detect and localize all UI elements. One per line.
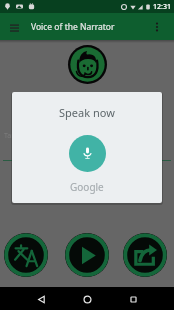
button[interactable]: Translate [4, 233, 48, 277]
staticText: Speak now [59, 105, 115, 120]
button[interactable]: Microphone [69, 135, 106, 172]
button[interactable]: Home [76, 288, 98, 310]
staticText: 12:31 [153, 2, 171, 12]
button[interactable]: Share [123, 233, 167, 277]
button[interactable]: Back [30, 288, 52, 310]
staticText: Voice of the Narrator [31, 21, 115, 33]
staticText: Target language [4, 131, 58, 141]
button[interactable]: Recent apps [122, 288, 144, 310]
button[interactable]: More options [148, 18, 166, 36]
button[interactable]: Navigation menu [5, 18, 23, 36]
button[interactable]: Play [65, 233, 109, 277]
staticText: Google [70, 180, 104, 194]
